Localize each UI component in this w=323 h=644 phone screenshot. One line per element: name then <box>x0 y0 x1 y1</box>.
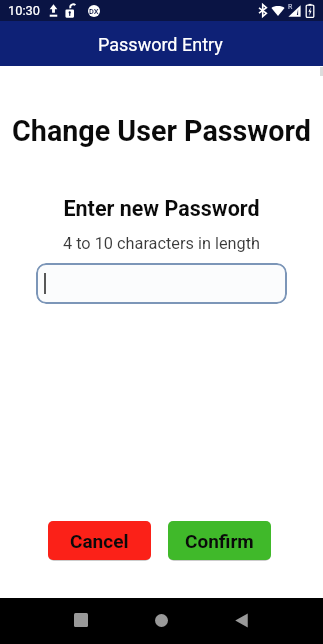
button[interactable]: Home <box>138 597 184 643</box>
staticText: Cancel <box>70 530 129 552</box>
staticText: Password Entry <box>98 34 223 55</box>
button[interactable]: Confirm <box>168 521 271 560</box>
staticText: Enter new Password <box>0 196 323 221</box>
staticText: R <box>288 3 293 11</box>
button[interactable]: Back <box>218 597 264 643</box>
button[interactable] <box>36 263 287 304</box>
staticText: Confirm <box>185 530 254 552</box>
staticText: Change User Password <box>0 114 323 148</box>
staticText: 4 to 10 characters in length <box>0 234 323 253</box>
staticText: 10:30 <box>8 3 40 18</box>
button[interactable]: Recent apps <box>58 597 104 643</box>
button[interactable]: Cancel <box>48 521 151 560</box>
staticText: DX <box>89 7 99 16</box>
